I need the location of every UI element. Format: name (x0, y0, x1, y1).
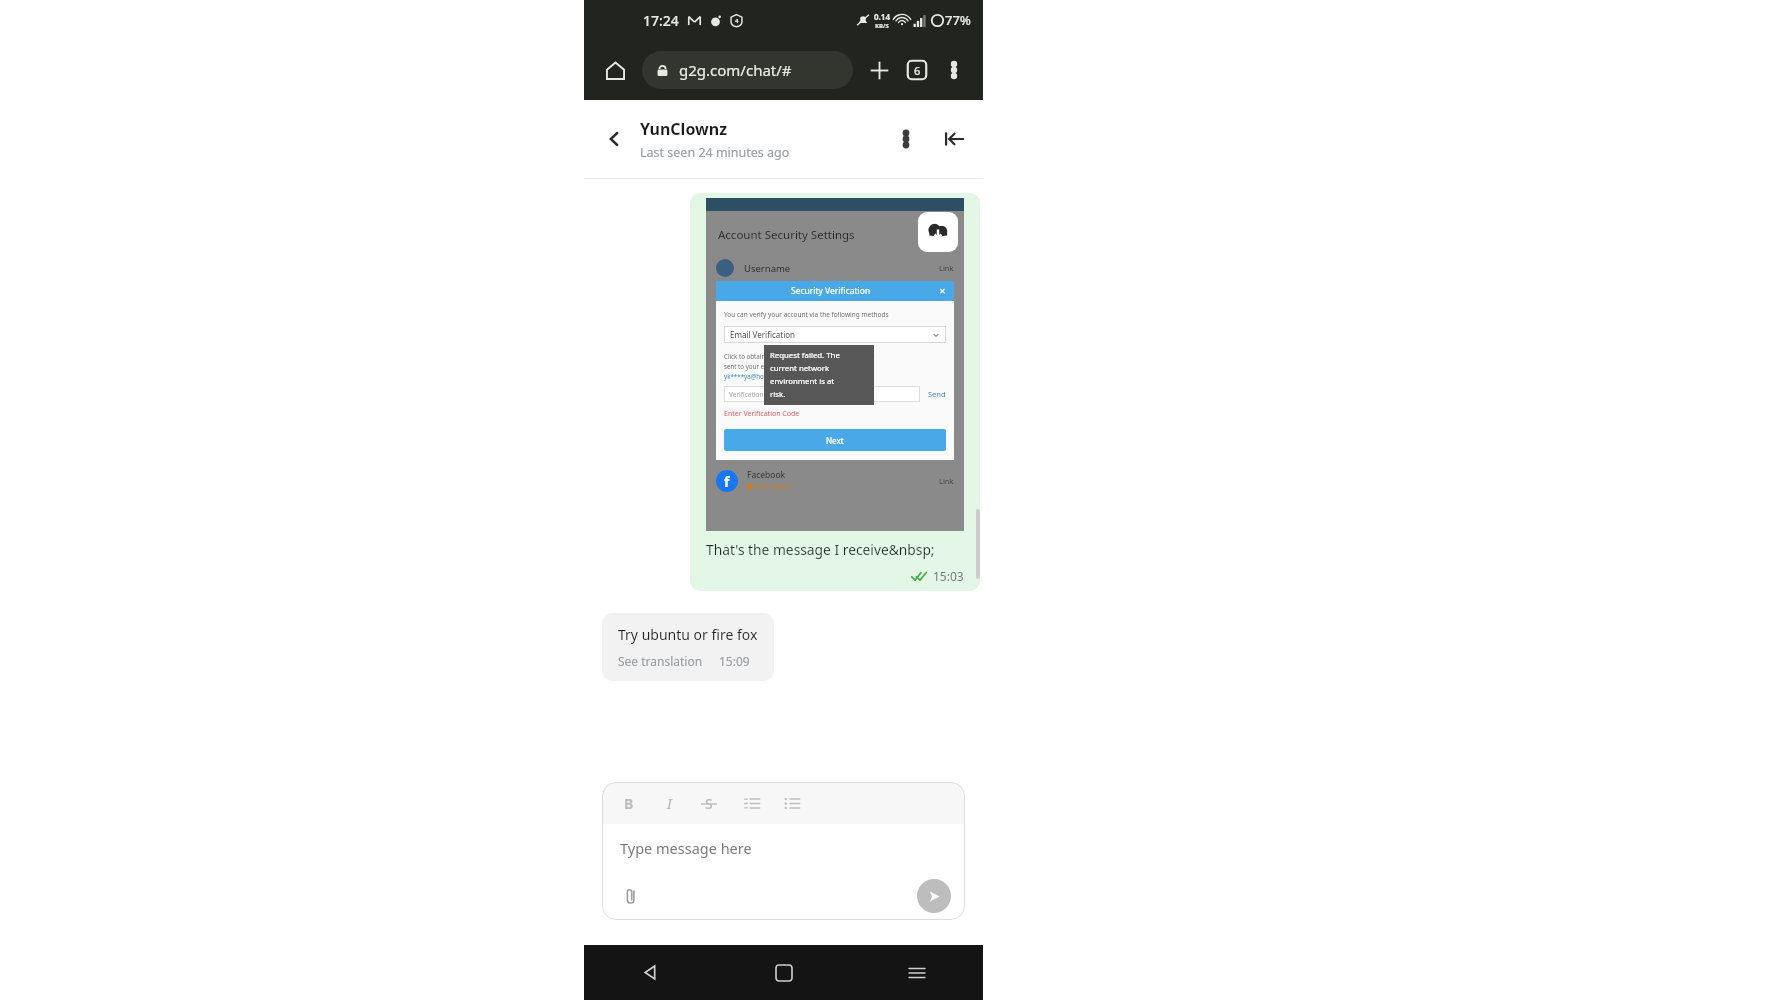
staticText: Verification Code (729, 390, 781, 399)
button[interactable]: Account Security Settings (690, 193, 980, 591)
staticText: Link (939, 476, 954, 486)
staticText: 15:03 (933, 568, 964, 584)
staticText: sent to your email address (724, 362, 802, 370)
staticText: yk****ya@hotmail.com (724, 372, 793, 380)
button[interactable]: Type message here (602, 824, 965, 872)
button[interactable]: Italic (656, 790, 682, 816)
button[interactable]: Home (598, 53, 632, 87)
staticText: Next (826, 435, 844, 446)
staticText: Request failed. The (770, 350, 840, 361)
staticText: Enter Verification Code (724, 409, 800, 419)
button[interactable]: Attach file (616, 881, 646, 911)
button[interactable]: Collapse (937, 122, 971, 156)
staticText: Security Verification (791, 285, 871, 297)
staticText: 17:24 (643, 11, 679, 30)
staticText: 6 (914, 63, 921, 78)
button[interactable]: g2g.com/chat/# (642, 51, 853, 89)
staticText: 15:09 (719, 653, 750, 669)
staticText: You can verify your account via the foll… (724, 310, 889, 319)
button[interactable]: New tab (863, 54, 895, 86)
staticText: KB/S (875, 22, 889, 30)
staticText: Facebook (747, 469, 786, 481)
staticText: S (705, 794, 713, 813)
staticText: Account Security Settings (718, 227, 855, 243)
staticText: Email Verification (730, 329, 796, 340)
staticText: Username (744, 262, 791, 275)
staticText: Try ubuntu or fire fox (618, 625, 758, 644)
button[interactable]: Strikethrough (696, 790, 722, 816)
staticText: Send (928, 389, 946, 399)
staticText: risk. (770, 389, 786, 400)
staticText: current network (770, 363, 830, 374)
staticText: Click to obtain the verification code, t… (724, 352, 875, 360)
staticText: I (667, 794, 672, 813)
button[interactable]: Back (584, 945, 717, 1000)
button[interactable]: Tabs (901, 54, 933, 86)
staticText: Last seen 24 minutes ago (640, 144, 790, 161)
button[interactable]: Recents (850, 945, 983, 1000)
staticText: 0.14 (874, 11, 890, 22)
button[interactable]: Numbered list (738, 790, 764, 816)
staticText: f (724, 472, 730, 491)
staticText: Not linked (756, 482, 790, 492)
button[interactable]: Bold (616, 790, 642, 816)
staticText: 4 (735, 17, 739, 25)
staticText: 77% (945, 11, 971, 29)
staticText: YunClownz (640, 118, 728, 140)
staticText: B (624, 794, 634, 813)
button[interactable]: Send (917, 879, 951, 913)
staticText: ✕ (939, 287, 946, 296)
button[interactable]: Back (598, 123, 630, 155)
button[interactable]: Download (918, 212, 958, 252)
button[interactable]: Home (717, 945, 850, 1000)
staticText: environment is at (770, 376, 835, 387)
button[interactable]: More options (939, 55, 969, 85)
button[interactable]: More options (889, 122, 923, 156)
button[interactable]: Bulleted list (778, 790, 804, 816)
button[interactable]: Next (724, 429, 946, 451)
staticText: Type message here (620, 838, 752, 858)
staticText: See translation (618, 653, 703, 669)
staticText: g2g.com/chat/# (679, 60, 792, 80)
staticText: That's the message I receive&nbsp; (706, 540, 935, 559)
staticText: Link (939, 263, 954, 273)
button[interactable]: Try ubuntu or fire fox (602, 613, 774, 681)
